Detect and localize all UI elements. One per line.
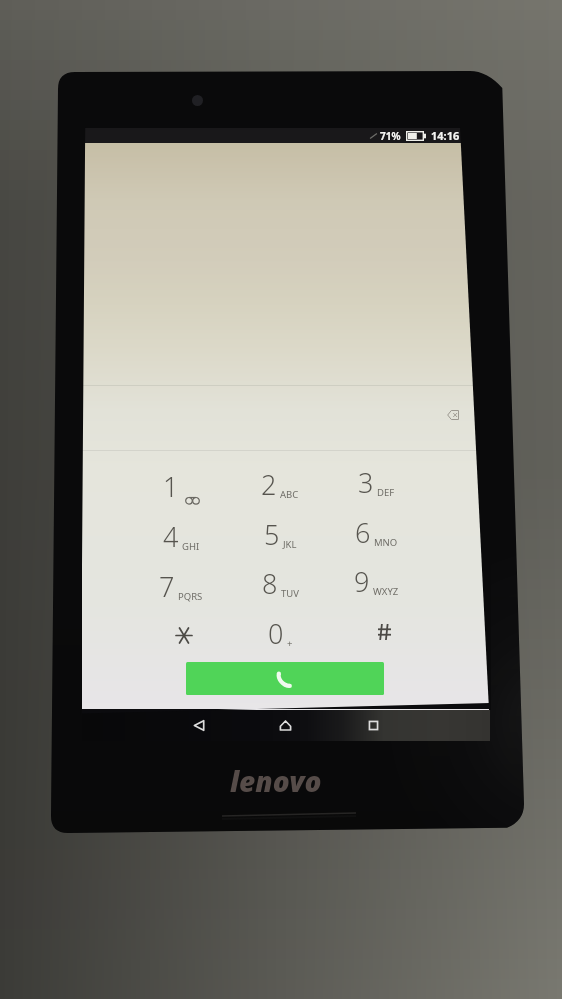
button[interactable] xyxy=(136,611,232,660)
staticText: DEF xyxy=(377,486,395,499)
staticText: lenovo xyxy=(230,762,322,800)
staticText: 6 xyxy=(355,514,371,551)
staticText: PQRS xyxy=(178,590,203,603)
staticText: 14:16 xyxy=(431,128,460,143)
staticText: 9 xyxy=(354,563,370,600)
staticText: 0 xyxy=(268,615,284,652)
button[interactable]: Recent apps xyxy=(356,710,390,741)
staticText: JKL xyxy=(283,538,297,551)
staticText: 71% xyxy=(380,129,401,143)
staticText: 4 xyxy=(163,518,179,555)
button[interactable]: 8 xyxy=(232,559,328,608)
button[interactable] xyxy=(336,607,432,656)
button[interactable]: 9 xyxy=(328,557,424,606)
button[interactable]: 0 xyxy=(232,609,328,658)
button[interactable]: 1 xyxy=(133,462,229,511)
staticText: GHI xyxy=(182,540,200,553)
staticText: WXYZ xyxy=(373,585,399,598)
button[interactable]: 3 xyxy=(328,458,424,507)
button[interactable]: 5 xyxy=(232,510,328,559)
staticText: 7 xyxy=(159,568,175,605)
staticText: 1 xyxy=(163,468,179,505)
button[interactable]: Home xyxy=(268,710,302,741)
button[interactable]: 4 xyxy=(133,512,229,561)
button[interactable]: 2 xyxy=(232,460,328,509)
staticText: 3 xyxy=(358,464,374,501)
button[interactable]: 7 xyxy=(133,562,229,611)
staticText: MNO xyxy=(374,536,398,549)
staticText: TUV xyxy=(281,587,299,600)
staticText: 2 xyxy=(261,466,277,503)
staticText: ABC xyxy=(280,488,299,501)
button[interactable]: Back xyxy=(182,710,216,741)
button[interactable]: 6 xyxy=(328,508,424,557)
staticText: 5 xyxy=(264,516,280,553)
staticText: + xyxy=(287,637,293,650)
button[interactable]: Backspace xyxy=(432,394,474,436)
button[interactable]: Call xyxy=(186,662,384,695)
staticText: 8 xyxy=(262,565,278,602)
